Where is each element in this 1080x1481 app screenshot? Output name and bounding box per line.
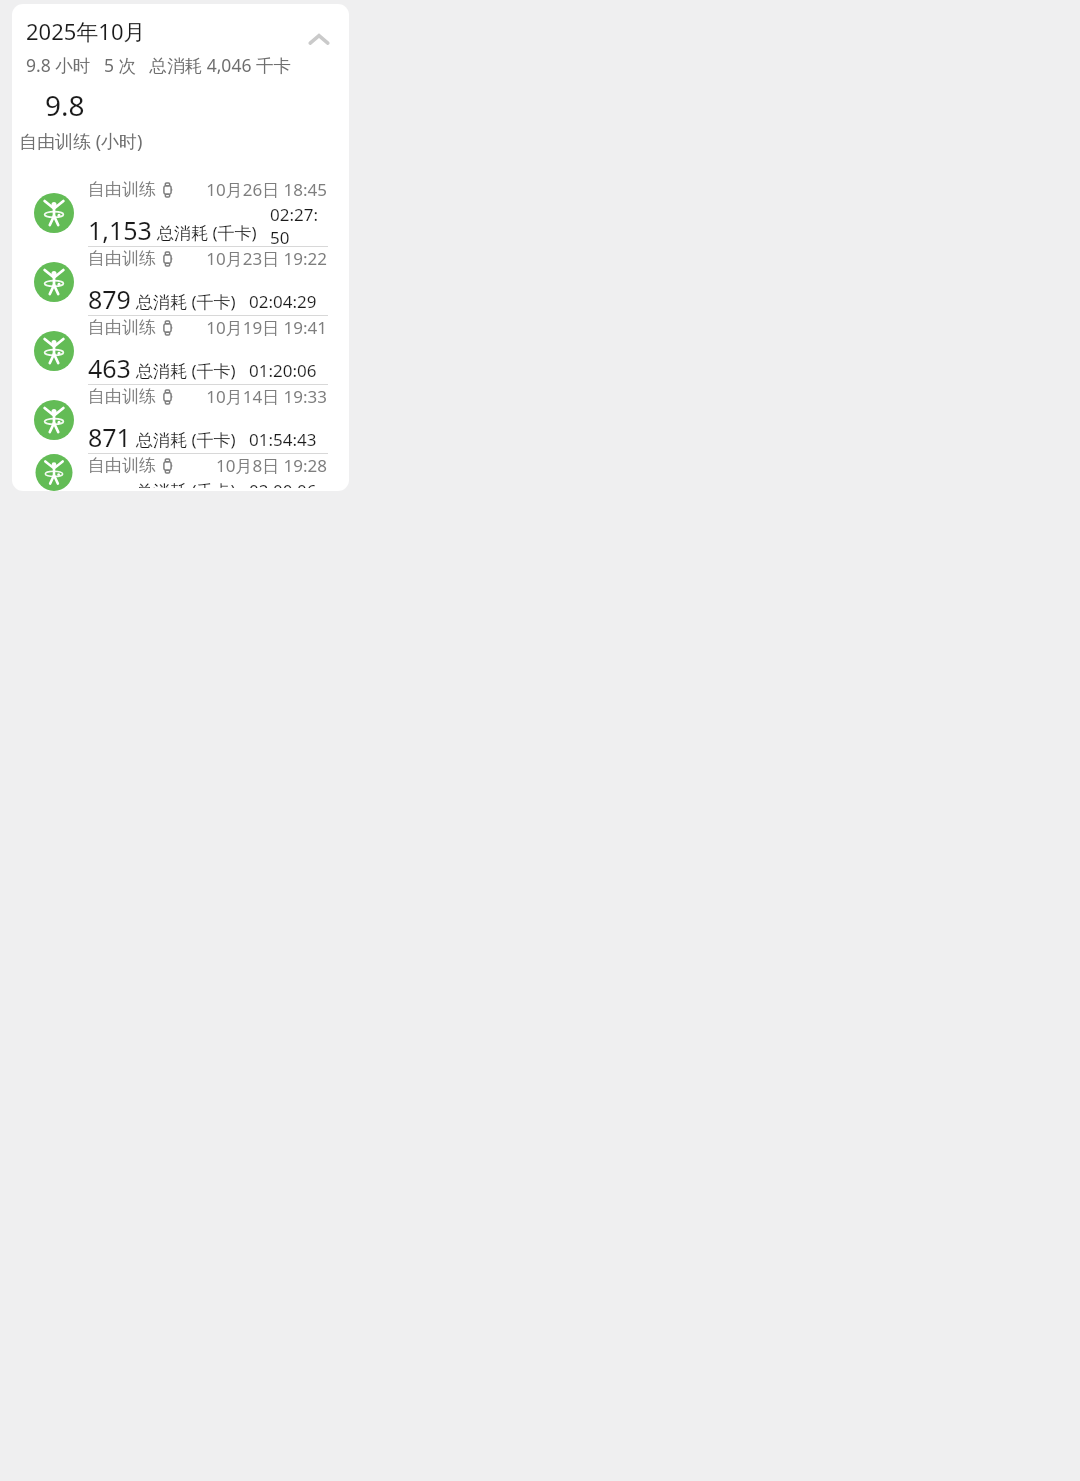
staticText: 自由训练 xyxy=(88,455,156,476)
button[interactable]: 自由训练 xyxy=(12,247,349,316)
staticText: 自由训练 xyxy=(88,317,156,338)
staticText: 自由训练 (小时) xyxy=(19,129,143,154)
staticText: 01:54:43 xyxy=(249,428,317,451)
button[interactable]: 2025年10月 xyxy=(12,4,349,78)
other: Watch xyxy=(163,321,172,335)
staticText: 总消耗 (千卡) xyxy=(136,479,236,488)
staticText: 总消耗 (千卡) xyxy=(136,428,236,451)
other: Watch xyxy=(163,390,172,404)
button[interactable]: 自由训练 xyxy=(12,385,349,454)
staticText: 02:04:29 xyxy=(249,290,317,313)
staticText: 10月23日 19:22 xyxy=(206,247,327,270)
staticText: 自由训练 xyxy=(88,248,156,269)
staticText: 879 xyxy=(88,282,131,316)
staticText: 10月8日 19:28 xyxy=(215,454,327,477)
other: Watch xyxy=(163,252,172,266)
staticText: 01:20:06 xyxy=(249,359,317,382)
staticText: 10月26日 18:45 xyxy=(206,178,327,201)
staticText: 463 xyxy=(88,351,131,385)
staticText: 2025年10月 xyxy=(26,16,146,46)
button[interactable]: 自由训练 xyxy=(12,316,349,385)
staticText: 自由训练 xyxy=(88,386,156,407)
button[interactable]: 自由训练 xyxy=(12,178,349,247)
staticText: 871 xyxy=(88,420,131,454)
other: Watch xyxy=(163,183,172,197)
staticText: 10月19日 19:41 xyxy=(206,316,327,339)
staticText: 02:27:50 xyxy=(270,203,327,244)
button[interactable]: 自由训练 xyxy=(12,454,349,491)
staticText: 总消耗 (千卡) xyxy=(136,359,236,382)
staticText: 总消耗 (千卡) xyxy=(136,290,236,313)
staticText: 自由训练 xyxy=(88,179,156,200)
staticText: 02:00:06 xyxy=(249,479,317,488)
staticText: 9.8 xyxy=(45,86,85,124)
button[interactable]: Collapse xyxy=(297,18,341,62)
staticText: 1,153 xyxy=(88,213,152,247)
staticText: 10月14日 19:33 xyxy=(206,385,327,408)
staticText: 总消耗 (千卡) xyxy=(157,221,257,244)
staticText: 9.8 小时 5 次 总消耗 4,046 千卡 xyxy=(26,53,291,77)
other: Watch xyxy=(163,459,172,473)
